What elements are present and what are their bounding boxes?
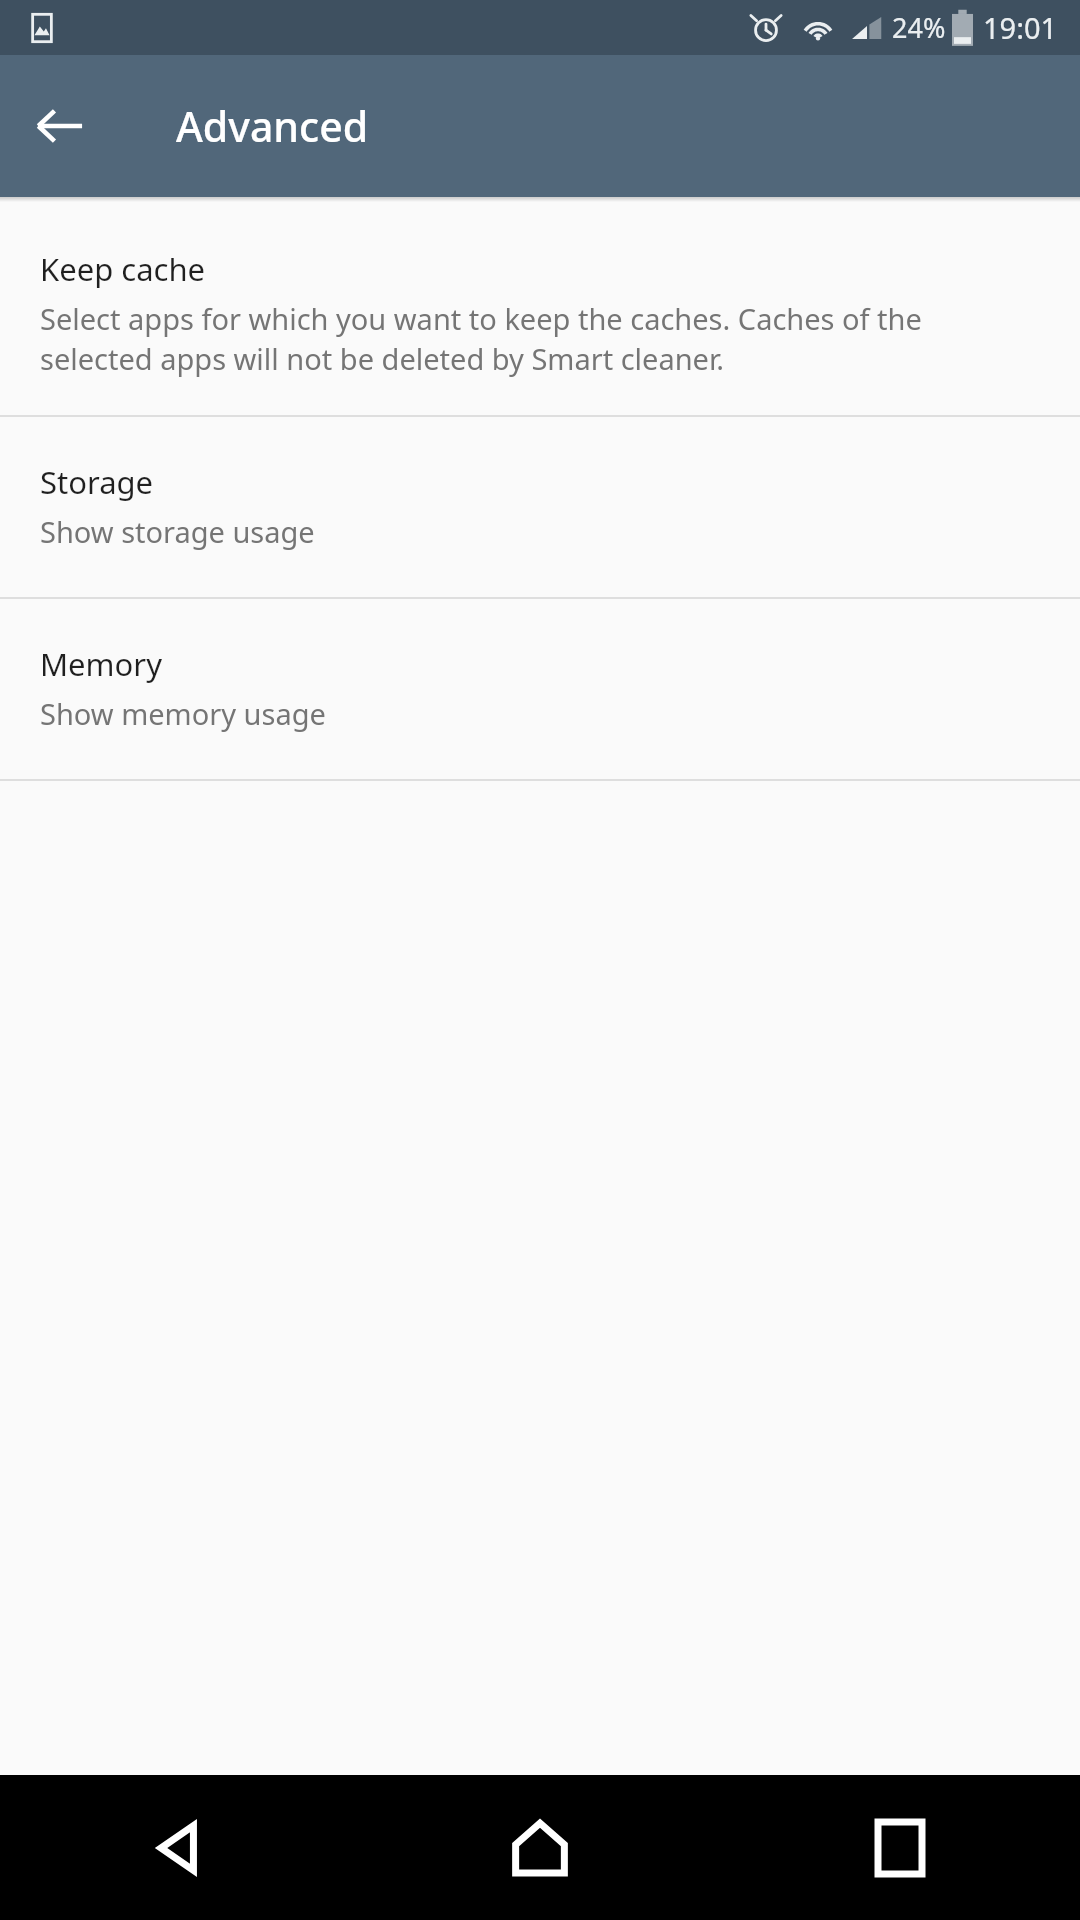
button[interactable]: Recent apps [720,1775,1080,1920]
button[interactable]: Back [24,90,96,162]
staticText: Memory [40,643,162,685]
staticText: Show storage usage [40,512,315,551]
staticText: Keep cache [40,248,206,290]
button[interactable]: Storage [0,417,1080,597]
staticText: Storage [40,461,154,503]
button[interactable]: Keep cache [0,202,1080,415]
staticText: Select apps for which you want to keep t… [40,299,1034,379]
staticText: Show memory usage [40,694,326,733]
button[interactable]: Home [360,1775,720,1920]
staticText: 19:01 [983,8,1058,47]
button[interactable]: Back [0,1775,360,1920]
button[interactable]: Memory [0,599,1080,779]
staticText: Advanced [176,98,369,154]
staticText: 24% [892,9,946,46]
